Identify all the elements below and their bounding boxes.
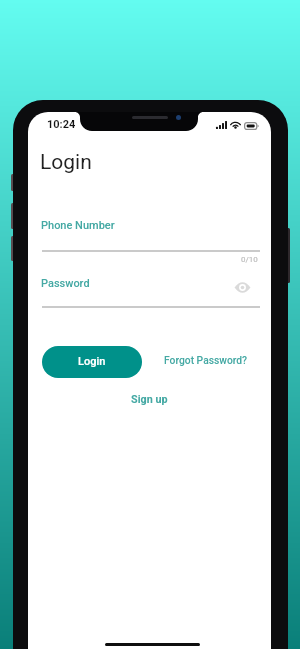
staticText: Phone Number xyxy=(41,219,115,232)
button[interactable]: Show password xyxy=(232,277,253,298)
staticText: Password xyxy=(41,277,90,290)
button[interactable]: Forgot Password? xyxy=(160,349,252,371)
staticText: 10:24 xyxy=(47,118,76,131)
staticText: 0/10 xyxy=(241,255,258,264)
staticText: Sign up xyxy=(131,393,168,406)
button[interactable]: Sign up xyxy=(127,388,172,411)
button[interactable]: Login xyxy=(42,346,142,378)
staticText: Login xyxy=(40,150,92,175)
staticText: Forgot Password? xyxy=(164,354,248,366)
staticText: Login xyxy=(78,355,106,368)
